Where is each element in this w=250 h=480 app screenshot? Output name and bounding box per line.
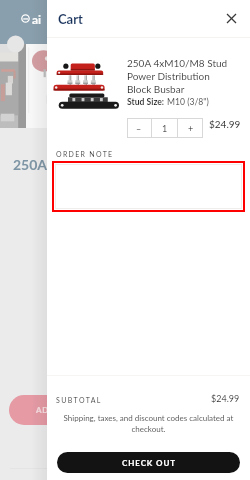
staticText: SUBTOTAL [56,396,102,404]
staticText: Cart [58,11,83,27]
staticText: CHECK OUT [122,458,176,468]
button[interactable]: CHECK OUT [57,452,240,473]
button[interactable] [55,164,242,209]
staticText: $24.99 [209,118,241,130]
button[interactable]: Increase quantity [178,118,203,138]
staticText: 1 [162,123,168,134]
staticText: + [188,123,194,134]
staticText: ai [32,12,42,26]
staticText: ORDER NOTE [56,150,114,158]
staticText: Stud Size: [127,97,167,107]
button[interactable]: Close cart [220,7,242,29]
staticText: ADD TO CART [36,405,96,415]
staticText: Shipping, taxes, and discount codes calc… [58,413,239,433]
button[interactable]: Decrease quantity [127,118,151,138]
staticText: 250A · [13,156,54,173]
staticText: M10 (3/8") [167,97,209,107]
staticText: $24.99 [211,393,240,404]
staticText: – [136,123,142,134]
staticText: 250A 4xM10/M8 Stud Power Distribution Bl… [127,57,230,95]
button[interactable]: ADD TO CART [9,395,149,425]
